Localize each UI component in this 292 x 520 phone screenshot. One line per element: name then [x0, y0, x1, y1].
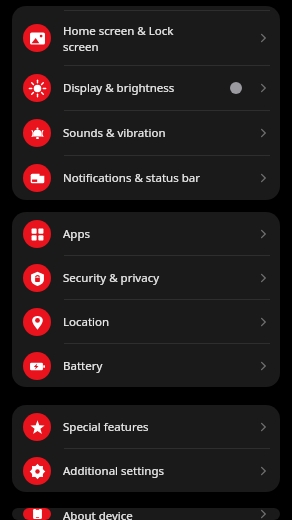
staticText: Location — [63, 314, 256, 330]
button[interactable]: Apps — [12, 212, 280, 255]
button[interactable]: Battery — [12, 344, 280, 387]
staticText: Security & privacy — [63, 270, 256, 286]
other: Open Special features — [256, 420, 270, 434]
button[interactable]: Sounds & vibration — [12, 111, 280, 155]
button[interactable]: About device — [12, 508, 280, 520]
staticText: Additional settings — [63, 463, 256, 479]
staticText: Battery — [63, 358, 256, 374]
staticText: Notifications & status bar — [63, 170, 256, 186]
other: Open About device — [256, 508, 270, 520]
staticText: Sounds & vibration — [63, 125, 256, 141]
other: Open Apps — [256, 227, 270, 241]
button[interactable]: Notifications & status bar — [12, 156, 280, 200]
button[interactable]: Display & brightness — [12, 66, 280, 110]
staticText: Apps — [63, 226, 256, 242]
other: Open Additional settings — [256, 464, 270, 478]
button[interactable]: Location — [12, 300, 280, 343]
staticText: Home screen & Lock screen — [63, 23, 256, 54]
other: Open Display & brightness — [256, 81, 270, 95]
other: Open Sounds & vibration — [256, 126, 270, 140]
button[interactable]: Security & privacy — [12, 256, 280, 299]
button[interactable]: Special features — [12, 405, 280, 448]
other: Open Notifications & status bar — [256, 171, 270, 185]
other: Open Location — [256, 315, 270, 329]
other: Open Home screen & Lock screen — [256, 31, 270, 45]
other: Open Battery — [256, 359, 270, 373]
button[interactable]: Additional settings — [12, 449, 280, 492]
staticText: About device — [63, 508, 256, 520]
staticText: Display & brightness — [63, 80, 230, 96]
button[interactable]: Home screen & Lock screen — [12, 11, 280, 65]
staticText: Special features — [63, 419, 256, 435]
other: Open Security & privacy — [256, 271, 270, 285]
